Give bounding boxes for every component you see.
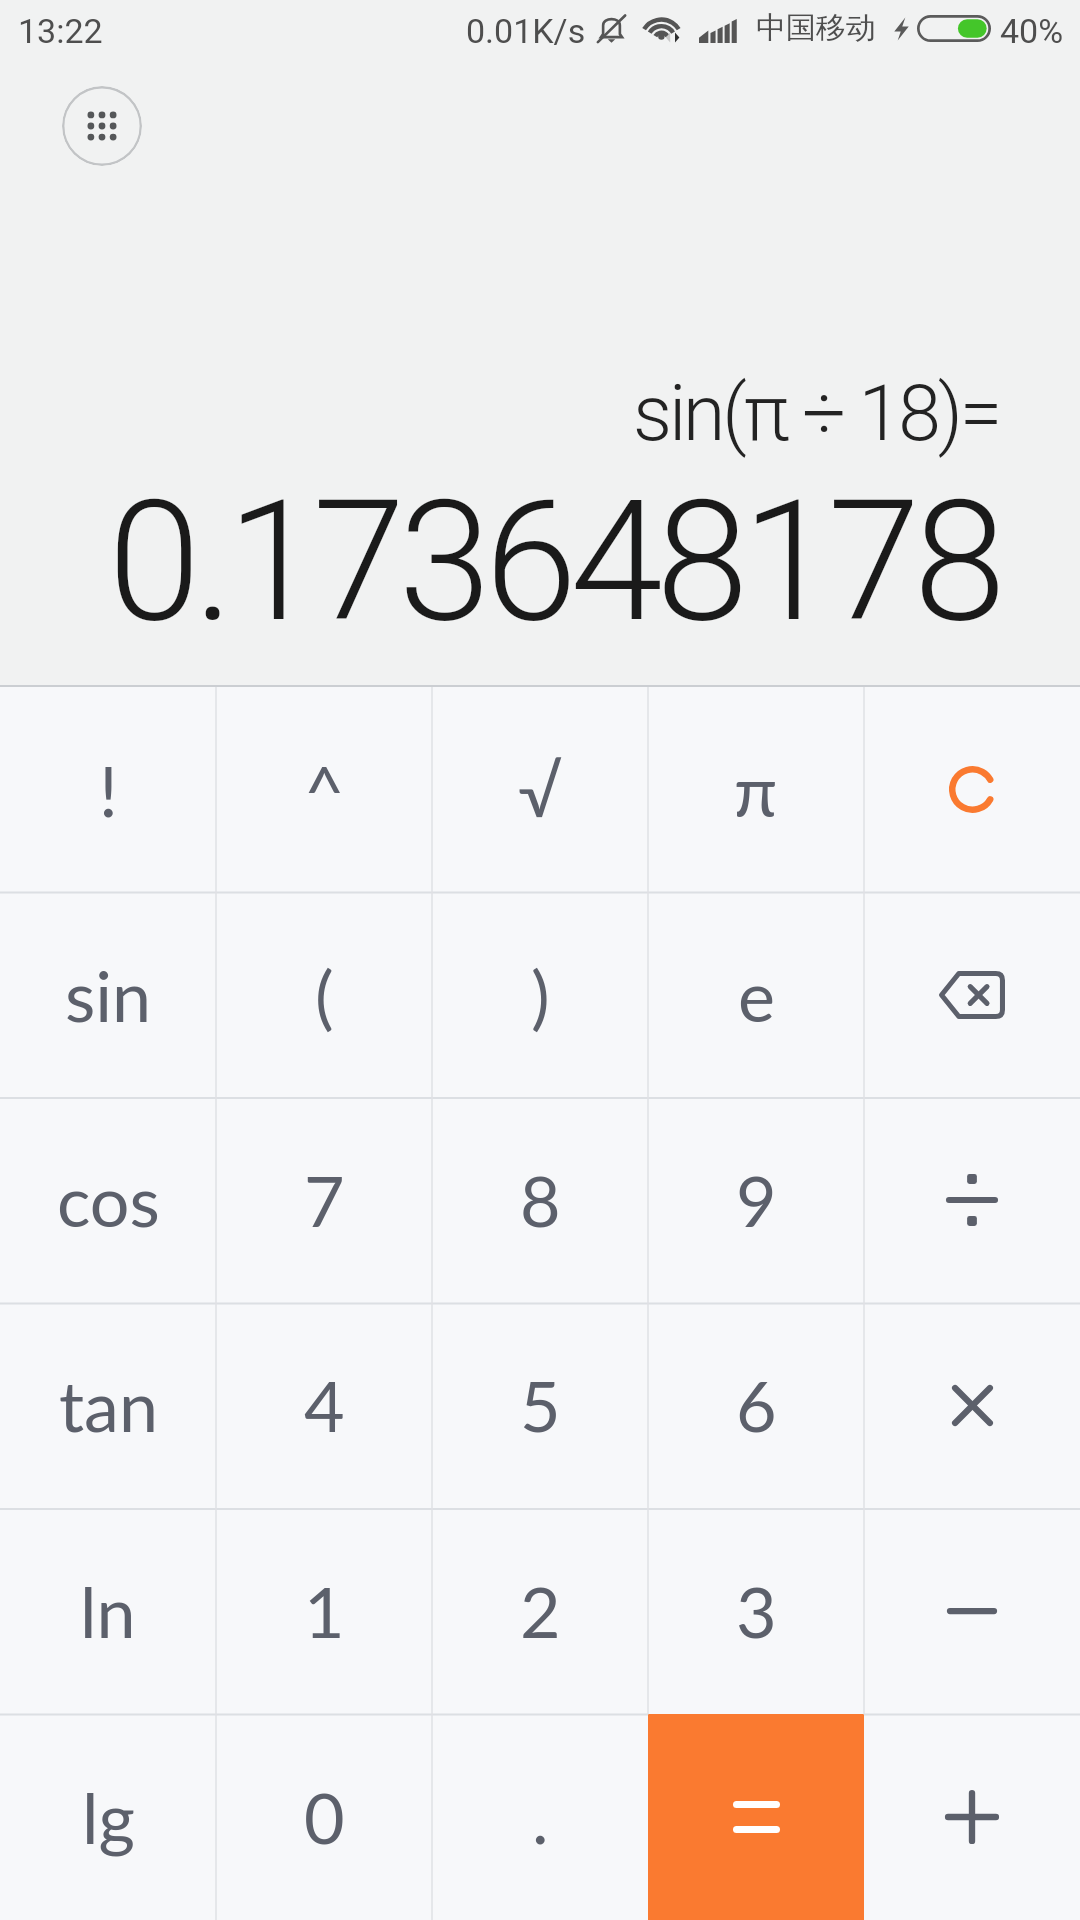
staticText: 1 bbox=[304, 1569, 345, 1653]
button[interactable]: 5 bbox=[432, 1302, 648, 1508]
button[interactable]: 8 bbox=[432, 1097, 648, 1302]
staticText: tan bbox=[59, 1363, 158, 1447]
button[interactable]: 7 bbox=[216, 1097, 432, 1302]
button[interactable]: Divide bbox=[864, 1097, 1080, 1302]
button[interactable]: ! bbox=[0, 687, 216, 892]
staticText: 4 bbox=[304, 1363, 345, 1447]
staticText: 5 bbox=[520, 1363, 561, 1447]
staticText: √ bbox=[518, 748, 562, 832]
button[interactable]: 2 bbox=[432, 1508, 648, 1714]
staticText: ( bbox=[315, 953, 334, 1037]
staticText: 9 bbox=[736, 1158, 777, 1242]
button[interactable]: Minus bbox=[864, 1508, 1080, 1714]
button[interactable]: Backspace bbox=[864, 892, 1080, 1097]
button[interactable]: Equals bbox=[648, 1714, 864, 1920]
staticText: . bbox=[532, 1775, 549, 1859]
staticText: lg bbox=[82, 1775, 135, 1859]
staticText: 2 bbox=[520, 1569, 561, 1653]
button[interactable]: tan bbox=[0, 1302, 216, 1508]
button[interactable]: sin bbox=[0, 892, 216, 1097]
staticText: π bbox=[734, 748, 778, 832]
button[interactable]: √ bbox=[432, 687, 648, 892]
staticText: ! bbox=[99, 748, 118, 832]
staticText: 0.01K/s bbox=[466, 11, 586, 51]
button[interactable]: 9 bbox=[648, 1097, 864, 1302]
button[interactable]: 6 bbox=[648, 1302, 864, 1508]
button[interactable]: π bbox=[648, 687, 864, 892]
button[interactable]: 1 bbox=[216, 1508, 432, 1714]
button[interactable]: Plus bbox=[864, 1714, 1080, 1920]
staticText: 0 bbox=[304, 1775, 345, 1859]
staticText: ln bbox=[80, 1569, 136, 1653]
staticText: 40% bbox=[1000, 11, 1064, 51]
staticText: 0.173648178 bbox=[108, 464, 1000, 660]
button[interactable]: Menu bbox=[62, 86, 142, 166]
button[interactable]: ln bbox=[0, 1508, 216, 1714]
button[interactable]: cos bbox=[0, 1097, 216, 1302]
staticText: cos bbox=[57, 1158, 160, 1242]
staticText: 6 bbox=[736, 1363, 777, 1447]
button[interactable]: Clear bbox=[864, 687, 1080, 892]
button[interactable]: 3 bbox=[648, 1508, 864, 1714]
staticText: 7 bbox=[304, 1158, 345, 1242]
button[interactable]: ) bbox=[432, 892, 648, 1097]
button[interactable]: 0 bbox=[216, 1714, 432, 1920]
button[interactable]: ( bbox=[216, 892, 432, 1097]
staticText: 中国移动 bbox=[756, 9, 876, 47]
button[interactable]: lg bbox=[0, 1714, 216, 1920]
button[interactable]: Multiply bbox=[864, 1302, 1080, 1508]
staticText: ^ bbox=[304, 748, 345, 832]
staticText: ) bbox=[531, 953, 550, 1037]
button[interactable]: ^ bbox=[216, 687, 432, 892]
staticText: 13:22 bbox=[18, 11, 103, 51]
staticText: 8 bbox=[520, 1158, 561, 1242]
staticText: 3 bbox=[736, 1569, 777, 1653]
staticText: sin(π ÷ 18)= bbox=[633, 369, 1000, 459]
button[interactable]: e bbox=[648, 892, 864, 1097]
staticText: e bbox=[738, 953, 775, 1037]
staticText: sin bbox=[65, 953, 152, 1037]
button[interactable]: . bbox=[432, 1714, 648, 1920]
button[interactable]: 4 bbox=[216, 1302, 432, 1508]
